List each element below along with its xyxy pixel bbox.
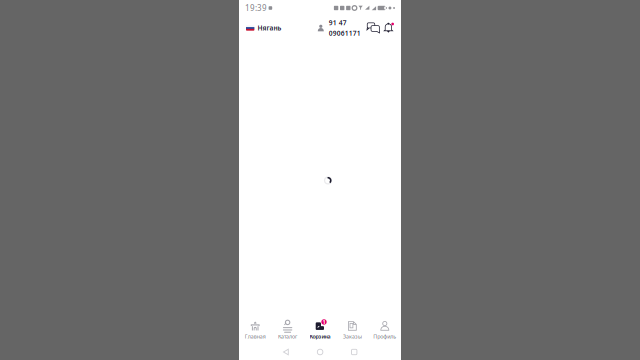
button[interactable]: 91 47 [318,18,361,38]
staticText: 09061171 [329,29,361,38]
button[interactable]: Back [283,349,289,355]
button[interactable]: Заказы [336,318,369,343]
button[interactable]: Нягань [246,21,281,35]
staticText: Главная [245,333,266,340]
staticText: 91 47 [329,18,347,27]
staticText: Каталог [278,333,297,340]
button[interactable]: Главная [239,318,271,343]
staticText: Корзина [309,333,330,340]
staticText: 1 [322,318,325,325]
button[interactable]: Notifications [383,23,394,33]
button[interactable]: Recents [351,349,357,355]
staticText: Заказы [343,333,362,340]
staticText: Профиль [373,333,396,340]
button[interactable]: Home [317,349,323,355]
staticText: Нягань [257,24,281,32]
button[interactable]: Профиль [369,318,401,343]
button[interactable]: Chat [367,22,380,34]
staticText: 19:39 [245,3,267,13]
button[interactable]: 1 [304,318,336,343]
button[interactable]: Каталог [271,318,304,343]
